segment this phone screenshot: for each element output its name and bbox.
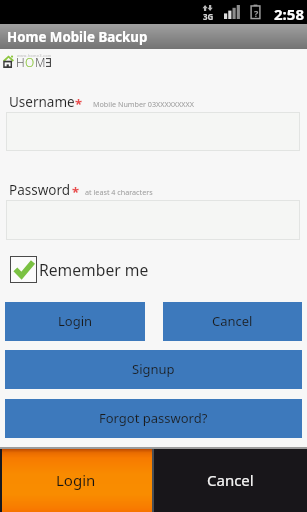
staticText: Login (58, 312, 93, 330)
staticText: Cancel (212, 312, 253, 330)
button[interactable]: Cancel (163, 302, 302, 341)
button[interactable]: Login (5, 302, 145, 341)
staticText: Cancel (207, 470, 254, 490)
staticText: ? (254, 7, 259, 19)
staticText: Forgot password? (99, 409, 208, 427)
staticText: Home Mobile Backup (7, 28, 148, 46)
staticText: Signup (132, 360, 175, 378)
staticText: Username (9, 93, 75, 111)
button[interactable]: Signup (5, 350, 302, 389)
button[interactable]: Login (0, 449, 152, 512)
staticText: Remember me (39, 259, 149, 280)
staticText: M (35, 54, 46, 70)
staticText: Login (56, 470, 96, 490)
staticText: * (75, 95, 83, 113)
staticText: * (72, 183, 80, 201)
staticText: at least 4 characters (85, 187, 153, 197)
staticText: www.home3.com (17, 53, 52, 58)
staticText: Password (9, 181, 71, 199)
staticText: 2:58 (274, 4, 304, 24)
button[interactable]: Forgot password? (5, 399, 302, 438)
staticText: 3G (203, 11, 214, 22)
button[interactable]: Remember me (10, 256, 149, 283)
button[interactable]: Cancel (154, 449, 307, 512)
staticText: Mobile Number 03XXXXXXXXX (93, 99, 194, 109)
staticText: H (16, 54, 25, 70)
staticText: O (25, 54, 35, 70)
